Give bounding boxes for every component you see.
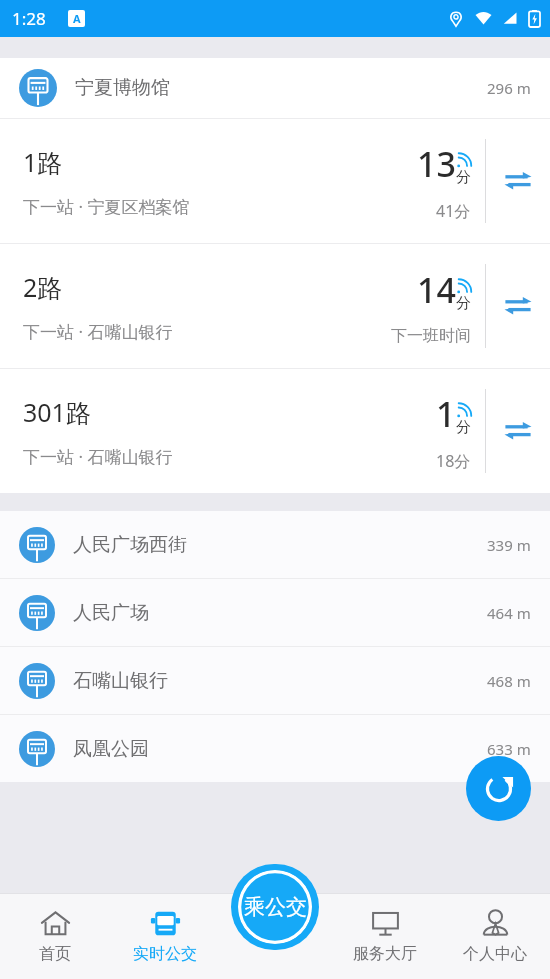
staticText: 分	[456, 168, 471, 187]
button[interactable]: 服务大厅	[330, 893, 440, 979]
button[interactable]: 石嘴山银行	[0, 647, 550, 714]
staticText: 下一站 · 石嘴山银行	[23, 320, 173, 343]
button[interactable]: 1路	[0, 119, 550, 243]
staticText: 14	[417, 267, 456, 313]
staticText: 首页	[39, 944, 71, 964]
staticText: 宁夏博物馆	[75, 76, 170, 100]
button[interactable]: Switch direction	[486, 369, 550, 493]
button[interactable]: 乘公交	[231, 864, 319, 950]
button[interactable]: 人民广场	[0, 579, 550, 646]
staticText: 分	[456, 418, 471, 437]
staticText: 13	[417, 141, 456, 187]
button[interactable]: 宁夏博物馆	[0, 58, 550, 118]
staticText: 41分	[436, 200, 471, 222]
staticText: 分	[456, 294, 471, 313]
staticText: 1:28	[12, 7, 46, 30]
staticText: 服务大厅	[353, 944, 417, 964]
button[interactable]: 人民广场西街	[0, 511, 550, 578]
staticText: A	[73, 11, 81, 26]
staticText: 个人中心	[463, 944, 527, 964]
staticText: 1路	[23, 145, 63, 179]
staticText: 18分	[436, 450, 471, 472]
button[interactable]: 凤凰公园	[0, 715, 550, 782]
staticText: 乘公交	[244, 894, 307, 920]
staticText: 339 m	[487, 535, 531, 555]
button[interactable]: 2路	[0, 244, 550, 368]
button[interactable]: 个人中心	[440, 893, 550, 979]
staticText: 实时公交	[133, 944, 197, 964]
staticText: 石嘴山银行	[73, 669, 168, 693]
staticText: 下一站 · 石嘴山银行	[23, 445, 173, 468]
staticText: 凤凰公园	[73, 737, 149, 761]
staticText: 2路	[23, 270, 63, 304]
button[interactable]: Refresh	[466, 756, 531, 821]
staticText: 301路	[23, 395, 91, 429]
button[interactable]: 实时公交	[110, 893, 220, 979]
staticText: 下一站 · 宁夏区档案馆	[23, 195, 190, 218]
staticText: 468 m	[487, 671, 531, 691]
staticText: 下一班时间	[391, 326, 471, 346]
button[interactable]: Switch direction	[486, 244, 550, 368]
staticText: 人民广场	[73, 601, 149, 625]
staticText: 296 m	[487, 78, 531, 98]
button[interactable]: 301路	[0, 369, 550, 493]
staticText: 633 m	[487, 739, 531, 759]
staticText: 464 m	[487, 603, 531, 623]
staticText: 1	[436, 391, 456, 437]
button[interactable]: Switch direction	[486, 119, 550, 243]
button[interactable]: 首页	[0, 893, 110, 979]
staticText: 人民广场西街	[73, 533, 187, 557]
